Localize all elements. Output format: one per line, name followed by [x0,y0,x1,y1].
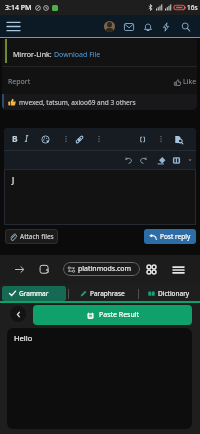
button[interactable]: Search [178,15,194,38]
button[interactable]: Insert media [169,151,183,169]
button[interactable]: Undo [121,151,135,169]
staticText: Attach files [20,232,54,241]
staticText: Paraphrase [90,289,125,298]
button[interactable]: Insert [171,128,185,150]
staticText: mvexed, tatsum, axioo69 and 3 others [19,98,136,107]
staticText: Mirror-Link: [13,50,54,60]
staticText: Report [8,77,31,87]
button[interactable]: Clear formatting [154,151,168,169]
staticText: Dictionary [158,289,190,298]
button[interactable]: Post reply [144,229,196,244]
staticText: Like [183,77,197,87]
staticText: 5 [46,268,49,275]
button[interactable]: Code [135,128,149,150]
button[interactable]: Forward [11,255,27,284]
button[interactable]: Apps [143,255,159,284]
staticText: Post reply [160,232,191,241]
staticText: platinmods.com [78,264,132,274]
button[interactable]: Insert link [72,128,86,150]
staticText: Download File [54,50,101,60]
button[interactable]: Redo [136,151,150,169]
staticText: Hello [14,333,33,343]
staticText: I [25,133,28,145]
button[interactable]: Report [5,74,34,90]
button[interactable]: Quick actions [158,15,174,38]
button[interactable]: Back [10,306,26,322]
staticText: Paste Result [99,310,140,320]
button[interactable]: Like [172,74,197,90]
button[interactable]: Attach files [5,229,58,244]
button[interactable]: Inbox [121,15,137,38]
button[interactable]: Browser menu [170,255,186,284]
button[interactable]: B [9,128,21,150]
staticText: 16s [187,3,198,12]
staticText: B [12,133,18,145]
button[interactable]: Dictionary [146,286,192,301]
staticText: J [12,175,15,186]
button[interactable]: Alerts [140,15,156,38]
staticText: Grammar [19,289,49,298]
button[interactable]: Paste Result [33,305,192,325]
button[interactable]: Grammar [2,286,66,301]
button[interactable]: Navigation menu [6,15,21,38]
button[interactable]: Tabs [36,255,52,284]
button[interactable]: Text color [38,128,52,150]
button[interactable]: Paraphrase [78,286,127,301]
button[interactable]: Account [101,15,117,38]
button[interactable]: platinmods.com [63,262,140,276]
button[interactable]: I [20,128,32,150]
staticText: 3:14 PM [5,3,32,13]
